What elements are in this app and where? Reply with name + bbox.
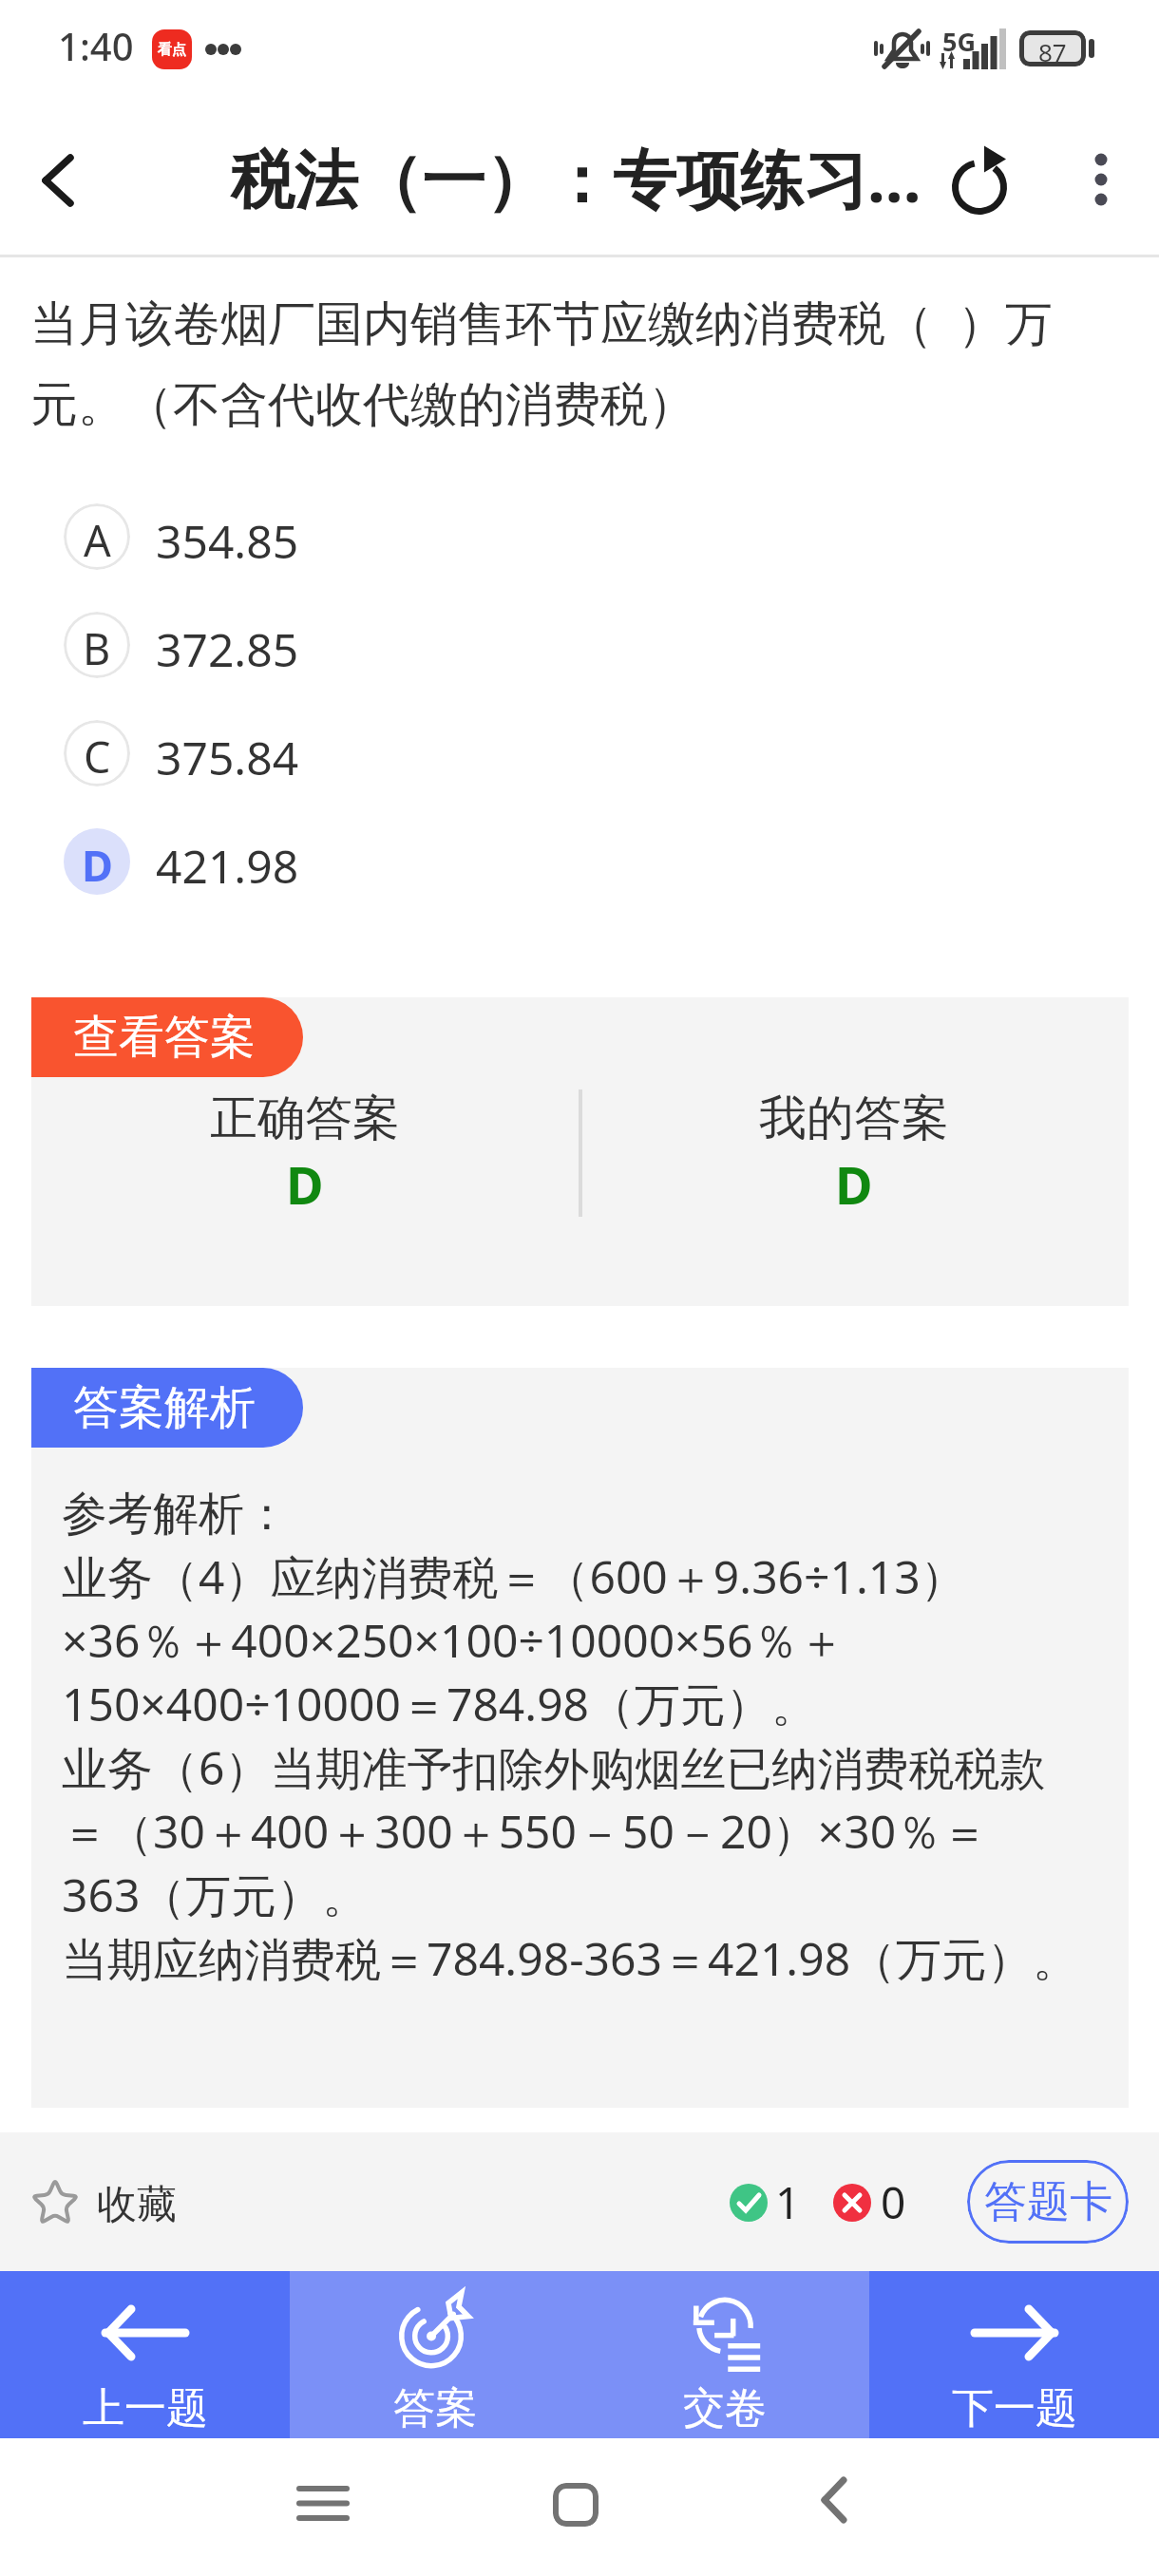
staticText: 正确答案 — [210, 1089, 400, 1148]
staticText: 查看答案 — [73, 1009, 256, 1066]
staticText: D — [286, 1149, 324, 1220]
staticText: 参考解析： 业务（4）应纳消费税＝（600＋9.36÷1.13） ×36％＋40… — [62, 1486, 1079, 1989]
button[interactable]: B — [0, 591, 1159, 699]
staticText: 答案解析 — [73, 1379, 256, 1436]
staticText: 交卷 — [683, 2382, 767, 2434]
button[interactable]: A — [0, 483, 1159, 591]
button[interactable]: 下一题 — [869, 2271, 1159, 2438]
staticText: 421.98 — [156, 835, 299, 897]
staticText: C — [84, 728, 111, 786]
button[interactable]: C — [0, 699, 1159, 807]
staticText: 下一题 — [952, 2382, 1077, 2434]
staticText: 372.85 — [156, 618, 299, 680]
button[interactable]: 答案 — [290, 2271, 579, 2438]
staticText: 收藏 — [97, 2180, 177, 2230]
button[interactable]: D — [0, 807, 1159, 916]
button[interactable]: More options — [1058, 137, 1144, 222]
staticText: 上一题 — [83, 2382, 208, 2434]
button[interactable]: 上一题 — [0, 2271, 290, 2438]
staticText: D — [835, 1149, 873, 1220]
button[interactable]: 答题卡 — [967, 2160, 1129, 2244]
staticText: 375.84 — [156, 727, 299, 788]
staticText: 答题卡 — [984, 2175, 1112, 2229]
staticText: 1 — [775, 2172, 801, 2232]
staticText: 87 — [1038, 35, 1067, 62]
staticText: D — [82, 836, 113, 894]
button[interactable]: 交卷 — [579, 2271, 869, 2438]
staticText: 1:40 — [58, 20, 134, 71]
button[interactable]: 收藏 — [29, 2176, 177, 2227]
staticText: 5G — [942, 24, 976, 59]
button[interactable]: Recent apps — [275, 2455, 370, 2550]
staticText: 354.85 — [156, 510, 299, 572]
staticText: 我的答案 — [759, 1089, 949, 1148]
staticText: 0 — [881, 2172, 906, 2232]
button[interactable]: Refresh — [936, 132, 1031, 227]
button[interactable]: Home — [528, 2457, 623, 2552]
staticText: 税法（一）：专项练习... — [231, 134, 921, 221]
staticText: A — [84, 511, 111, 569]
staticText: 看点 — [158, 41, 186, 59]
button[interactable]: Back — [783, 2453, 878, 2548]
staticText: 答案 — [393, 2382, 477, 2434]
staticText: B — [83, 619, 111, 677]
button[interactable]: Back — [9, 132, 104, 227]
staticText: 当月该卷烟厂国内销售环节应缴纳消费税（ ）万 元。（不含代收代缴的消费税） — [30, 290, 1159, 435]
